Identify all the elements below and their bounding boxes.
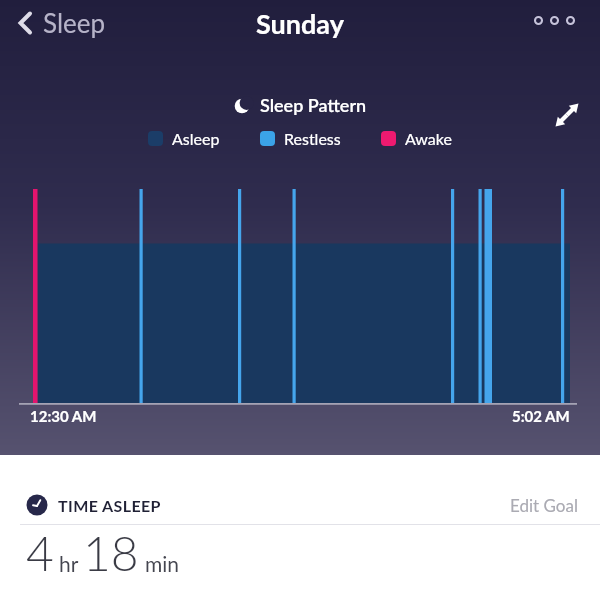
staticText: Sunday xyxy=(256,7,344,39)
staticText: TIME ASLEEP xyxy=(58,496,161,515)
button[interactable] xyxy=(534,16,575,25)
staticText: 18 xyxy=(83,524,139,582)
staticText: Restless xyxy=(284,129,341,148)
staticText: Asleep xyxy=(172,129,220,148)
staticText: 12:30 AM xyxy=(30,407,97,425)
staticText: Sleep xyxy=(43,7,106,38)
staticText: 4 xyxy=(26,524,54,582)
staticText: hr xyxy=(59,551,79,576)
staticText: 5:02 AM xyxy=(512,407,570,425)
staticText: Edit Goal xyxy=(510,495,578,515)
button[interactable]: Edit Goal xyxy=(510,495,578,515)
staticText: Sleep Pattern xyxy=(260,94,367,116)
staticText: min xyxy=(145,551,180,576)
staticText: Awake xyxy=(405,129,452,148)
button[interactable] xyxy=(552,100,582,130)
button[interactable]: Sleep xyxy=(14,7,106,38)
